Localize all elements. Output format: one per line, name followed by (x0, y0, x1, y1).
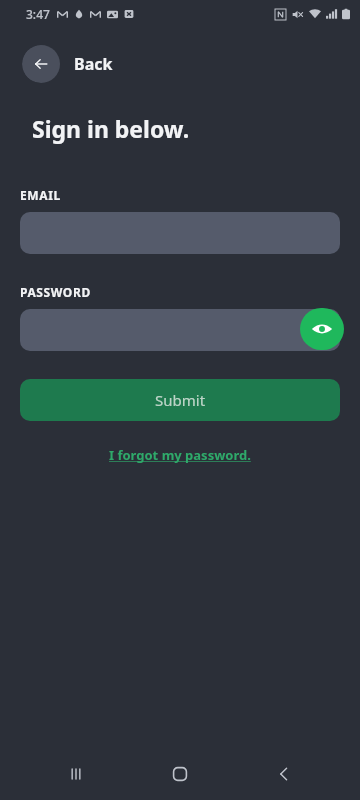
button[interactable]: Back (22, 45, 123, 83)
staticText: 3:47 (26, 6, 50, 22)
button[interactable] (20, 212, 340, 254)
staticText: I forgot my password. (109, 446, 251, 464)
staticText: Back (74, 53, 113, 75)
staticText: PASSWORD (20, 284, 91, 300)
button[interactable]: I forgot my password. (103, 443, 257, 467)
staticText: Submit (155, 390, 206, 410)
button[interactable]: Back (256, 748, 312, 800)
button[interactable]: Show password (300, 308, 344, 350)
staticText: EMAIL (20, 187, 61, 203)
staticText: Sign in below. (32, 113, 190, 144)
button[interactable]: Submit (20, 379, 340, 421)
button[interactable] (20, 309, 340, 351)
button[interactable]: Home (152, 748, 208, 800)
button[interactable]: Recent apps (48, 748, 104, 800)
other: Back (22, 45, 60, 83)
